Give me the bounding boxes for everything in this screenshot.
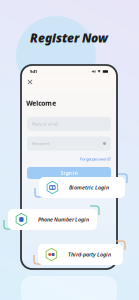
button[interactable]: Password (27, 136, 111, 150)
staticText: Biometric Login (69, 184, 109, 191)
staticText: Forgot password? (80, 156, 111, 162)
button[interactable]: Forgot password? (27, 156, 111, 162)
button[interactable]: Phone Number Login (8, 209, 97, 230)
staticText: Password (32, 141, 49, 146)
button[interactable]: Biometric Login (39, 177, 125, 198)
staticText: Phone or email (32, 121, 58, 127)
button[interactable]: Close (25, 77, 35, 87)
staticText: Sign in (60, 169, 77, 177)
staticText: Welcome (26, 99, 56, 108)
button[interactable]: Phone or email (27, 117, 111, 131)
staticText: Register Now (30, 30, 108, 46)
button[interactable]: Third-party Login (38, 244, 123, 265)
staticText: Third-party Login (68, 251, 111, 258)
button[interactable]: Sign in (27, 167, 111, 179)
staticText: 9:41 (30, 69, 37, 74)
staticText: Phone Number Login (38, 216, 89, 223)
